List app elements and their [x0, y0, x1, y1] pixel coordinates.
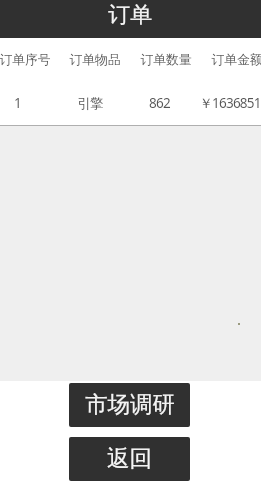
staticText: 862: [149, 94, 170, 112]
staticText: 引擎: [77, 95, 103, 112]
staticText: 订单物品: [69, 52, 121, 68]
staticText: 订单金额: [211, 52, 261, 68]
staticText: 返回: [107, 444, 152, 472]
staticText: 1: [14, 94, 21, 112]
staticText: 订单: [108, 1, 152, 29]
staticText: ￥1636851: [199, 94, 261, 112]
button[interactable]: 返回: [69, 437, 190, 481]
button[interactable]: 市场调研: [69, 383, 190, 427]
staticText: 订单序号: [0, 52, 51, 68]
staticText: 市场调研: [85, 390, 175, 418]
button[interactable]: 1: [0, 83, 261, 125]
staticText: 订单数量: [140, 52, 192, 68]
